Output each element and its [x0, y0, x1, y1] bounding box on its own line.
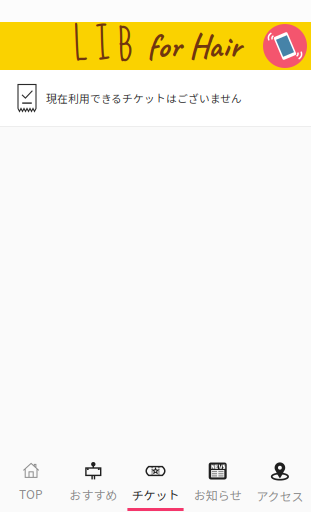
staticText: アクセス — [256, 487, 303, 505]
button[interactable]: 現在利用できるチケットはございません — [0, 70, 311, 126]
button[interactable]: アクセス — [249, 450, 311, 512]
button[interactable]: お知らせ — [187, 450, 249, 512]
staticText: おすすめ — [69, 486, 117, 503]
button[interactable]: Call the salon — [263, 24, 307, 68]
staticText: B — [118, 8, 132, 84]
staticText: チケット — [131, 486, 179, 503]
button[interactable]: TOP — [0, 450, 62, 512]
staticText: I — [96, 8, 110, 84]
button[interactable]: おすすめ — [62, 450, 124, 512]
staticText: お知らせ — [194, 486, 242, 503]
staticText: for Hair — [147, 25, 241, 67]
staticText: TOP — [19, 485, 43, 502]
staticText: 現在利用できるチケットはございません — [46, 90, 242, 106]
button[interactable]: チケット — [124, 450, 187, 512]
staticText: L — [74, 8, 88, 84]
